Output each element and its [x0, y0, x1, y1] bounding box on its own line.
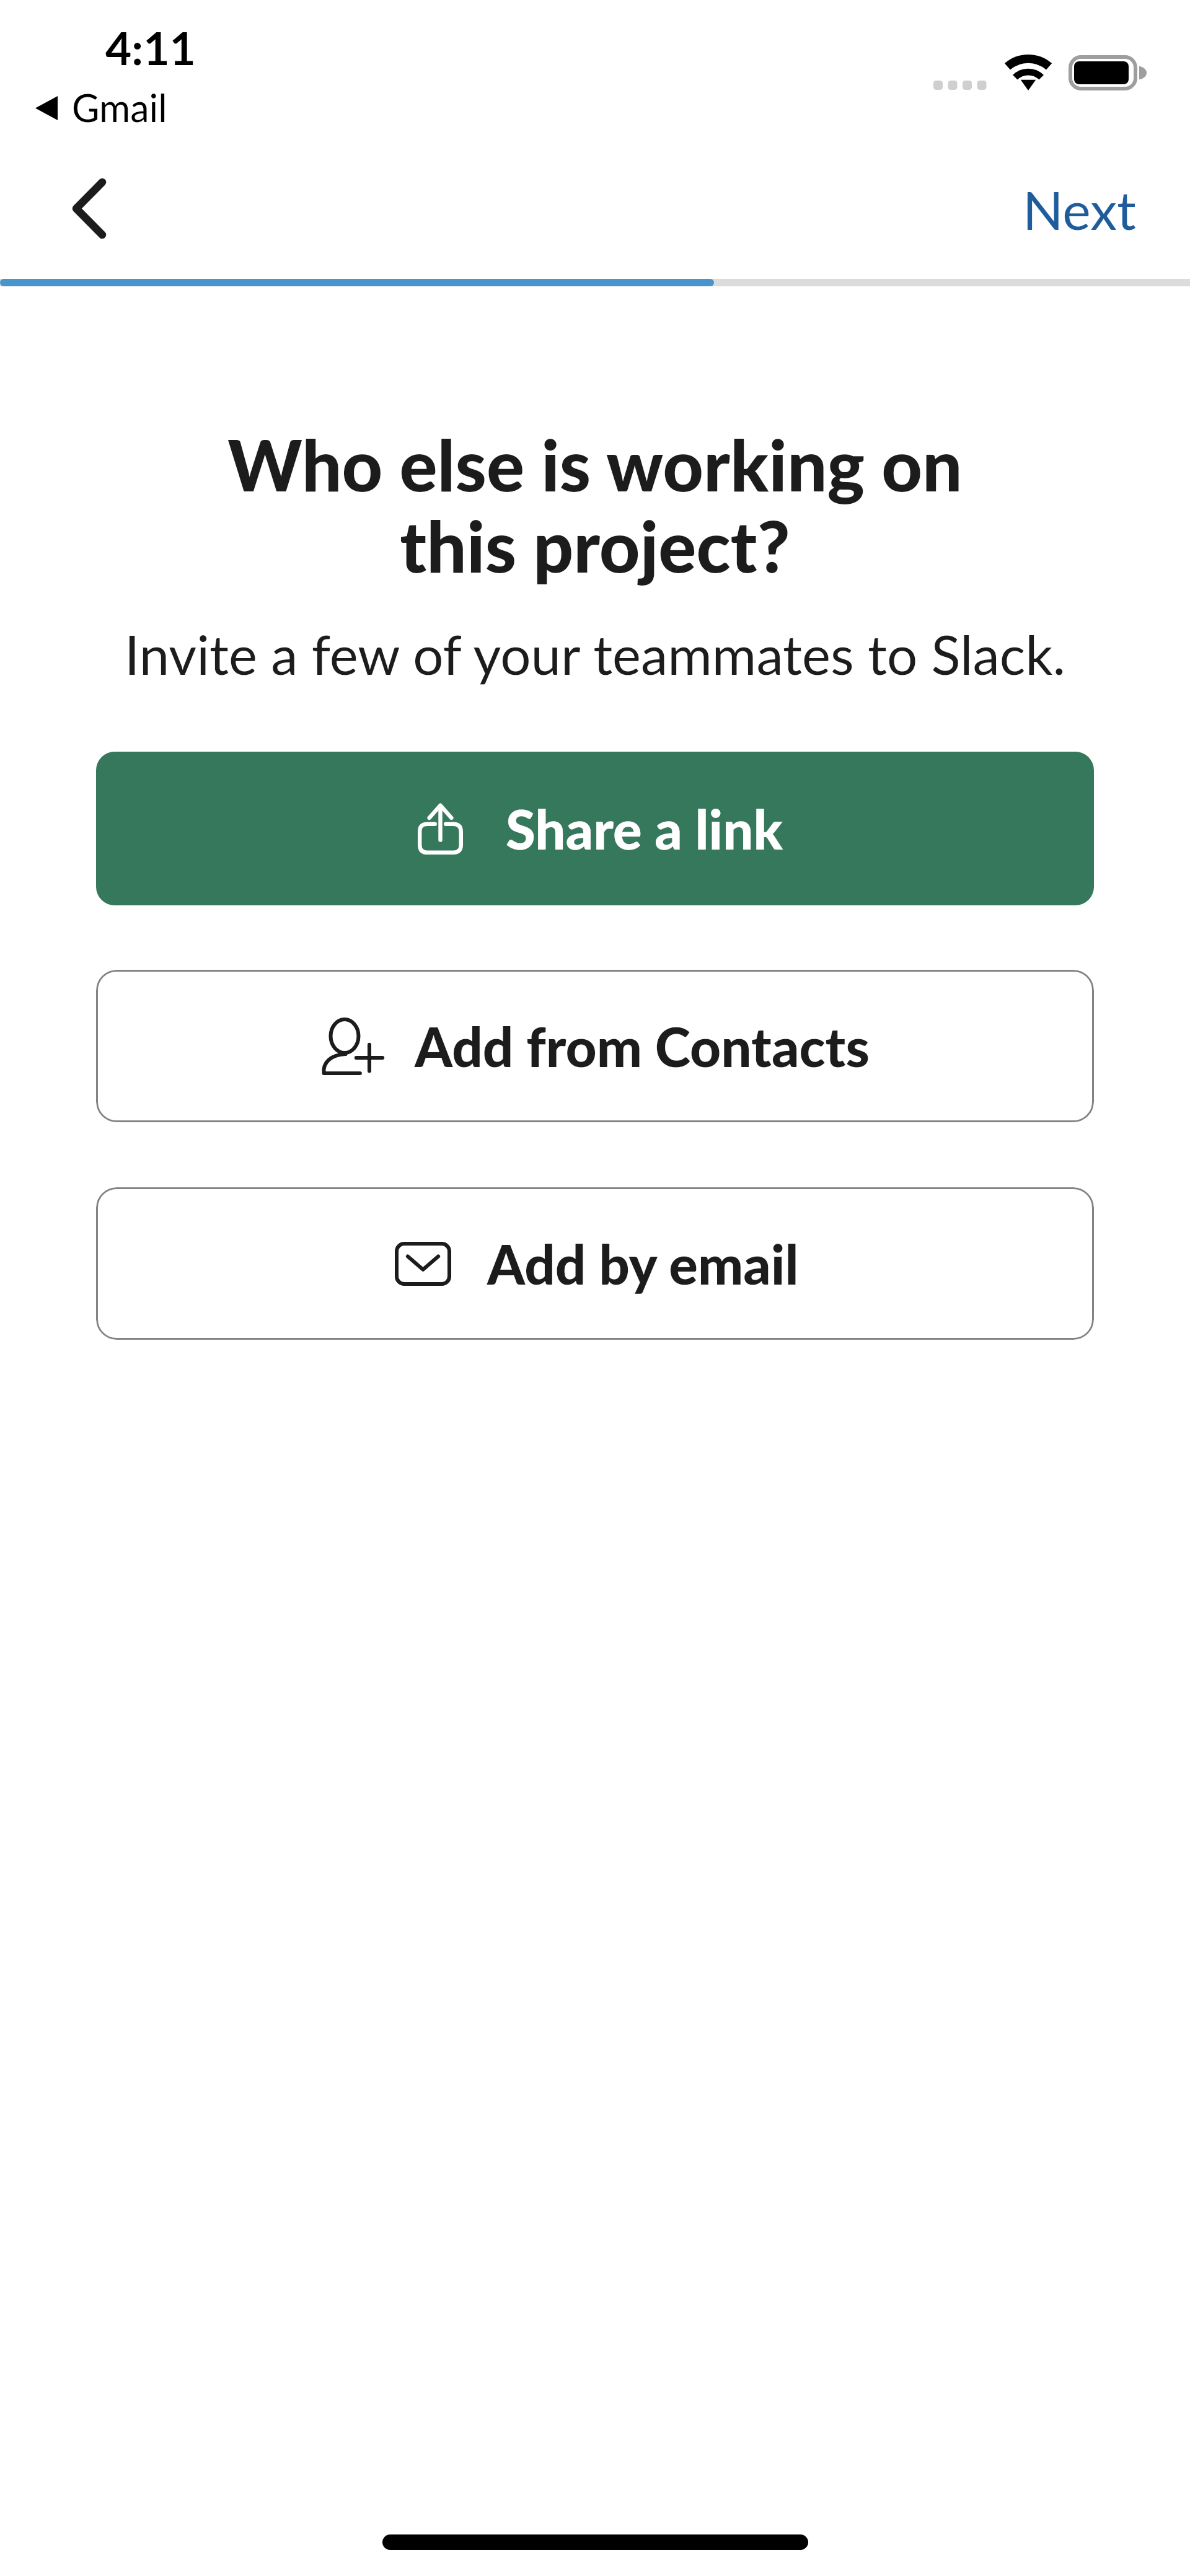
button[interactable]: Next — [999, 160, 1160, 258]
button[interactable]: Add by email — [96, 1187, 1094, 1340]
button[interactable]: Share a link — [96, 752, 1094, 905]
staticText: Next — [1023, 177, 1136, 241]
staticText: Add by email — [487, 1231, 799, 1296]
staticText: Add from Contacts — [415, 1014, 870, 1078]
staticText: 4:11 — [105, 20, 196, 75]
staticText: Gmail — [72, 85, 167, 130]
button[interactable]: Back — [49, 169, 130, 248]
staticText: Who else is working on this project? — [0, 421, 1190, 587]
button[interactable]: Add from Contacts — [96, 970, 1094, 1122]
staticText: Invite a few of your teammates to Slack. — [0, 622, 1190, 686]
staticText: Share a link — [506, 796, 783, 861]
